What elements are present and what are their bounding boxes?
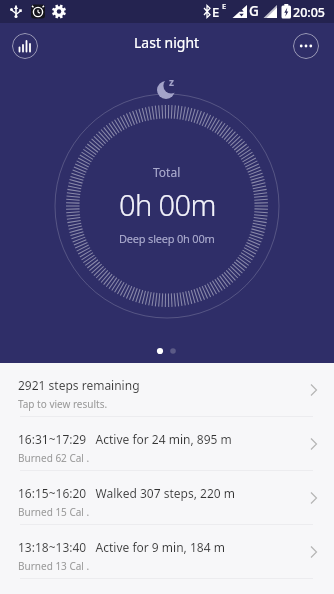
button[interactable]: 16:31~17:29 Active for 24 min, 895 m bbox=[0, 417, 334, 470]
staticText: 20:05 bbox=[293, 4, 326, 21]
staticText: E bbox=[222, 1, 227, 11]
staticText: Last night bbox=[134, 33, 200, 52]
staticText: 0h 00m bbox=[119, 185, 216, 224]
staticText: Tap to view results. bbox=[18, 397, 108, 411]
staticText: Burned 13 Cal . bbox=[18, 559, 90, 573]
staticText: 13:18~13:40 Active for 9 min, 184 m bbox=[18, 539, 225, 555]
staticText: 16:15~16:20 Walked 307 steps, 220 m bbox=[18, 485, 235, 501]
staticText: 16:31~17:29 Active for 24 min, 895 m bbox=[18, 431, 232, 447]
button[interactable]: 16:15~16:20 Walked 307 steps, 220 m bbox=[0, 471, 334, 524]
button[interactable] bbox=[293, 33, 319, 59]
button[interactable] bbox=[12, 33, 38, 59]
button[interactable]: 13:18~13:40 Active for 9 min, 184 m bbox=[0, 525, 334, 578]
staticText: z bbox=[169, 75, 174, 89]
staticText: Total bbox=[153, 164, 181, 180]
staticText: G bbox=[249, 2, 259, 20]
staticText: 2921 steps remaining bbox=[18, 377, 140, 393]
staticText: Burned 62 Cal . bbox=[18, 451, 90, 465]
staticText: Deep sleep 0h 00m bbox=[119, 231, 215, 246]
button[interactable]: 2921 steps remaining bbox=[0, 363, 334, 416]
staticText: Burned 15 Cal . bbox=[18, 505, 90, 519]
staticText: E bbox=[212, 3, 220, 21]
